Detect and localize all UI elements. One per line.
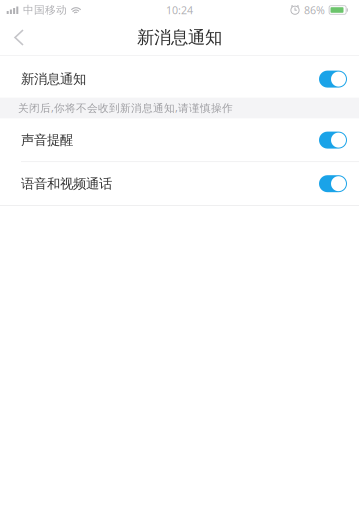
- staticText: 10:24: [166, 3, 193, 17]
- staticText: 语音和视频通话: [21, 175, 112, 192]
- button[interactable]: 语音和视频通话: [0, 162, 359, 205]
- button[interactable]: 新消息通知: [0, 56, 359, 98]
- staticText: 中国移动: [23, 3, 67, 16]
- button[interactable]: Back: [0, 20, 40, 55]
- button[interactable]: 声音提醒: [0, 119, 359, 162]
- staticText: 关闭后,你将不会收到新消息通知,请谨慎操作: [18, 101, 233, 115]
- staticText: 声音提醒: [21, 132, 73, 148]
- staticText: 新消息通知: [21, 71, 86, 87]
- staticText: 86%: [304, 3, 325, 17]
- staticText: 新消息通知: [137, 27, 222, 48]
